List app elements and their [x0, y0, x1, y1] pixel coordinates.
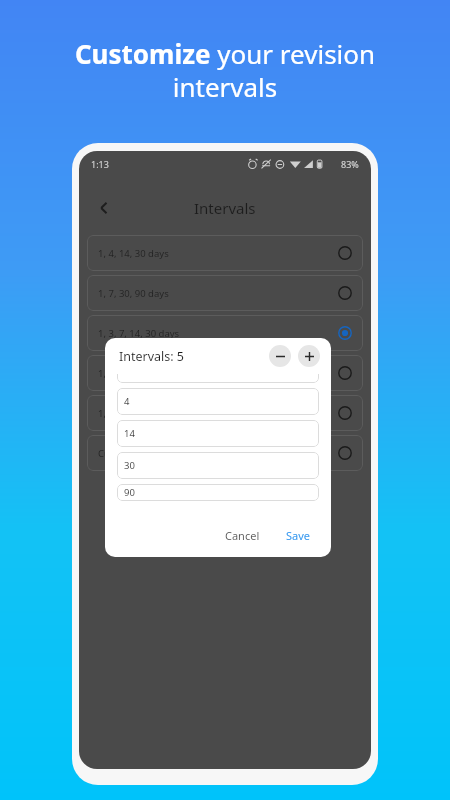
button[interactable]: Increase: [298, 345, 320, 367]
staticText: 1, 7, 30, 90 days: [98, 287, 169, 300]
button[interactable]: 30: [117, 452, 319, 479]
button[interactable]: Back: [87, 191, 121, 225]
button[interactable]: 1, 4, 14, 30 days: [87, 235, 363, 271]
staticText: 90: [124, 486, 135, 499]
button[interactable]: 1: [117, 374, 319, 383]
staticText: 1:13: [91, 158, 109, 170]
staticText: 1, 2, 5, 10, 20 days: [98, 407, 180, 420]
staticText: 1, 3, 7, 14, 30 days: [98, 327, 180, 340]
button[interactable]: Custom: [87, 435, 363, 471]
button[interactable]: 4: [117, 388, 319, 415]
staticText: 1, 5, 15, 40 days: [98, 367, 169, 380]
staticText: Intervals: 5: [119, 348, 185, 365]
button[interactable]: 1, 5, 15, 40 days: [87, 355, 363, 391]
staticText: Cancel: [225, 528, 260, 543]
staticText: 30: [124, 459, 135, 472]
button[interactable]: Save: [280, 525, 317, 546]
button[interactable]: 90: [117, 484, 319, 501]
button[interactable]: Cancel: [219, 525, 266, 546]
button[interactable]: 1, 3, 7, 14, 30 days: [87, 315, 363, 351]
staticText: Custom: [98, 447, 133, 460]
button[interactable]: 1, 2, 5, 10, 20 days: [87, 395, 363, 431]
button[interactable]: Decrease: [269, 345, 291, 367]
button[interactable]: 1, 7, 30, 90 days: [87, 275, 363, 311]
button[interactable]: 14: [117, 420, 319, 447]
staticText: 1, 4, 14, 30 days: [98, 247, 169, 260]
staticText: 83%: [341, 158, 359, 170]
staticText: Intervals: [194, 198, 256, 218]
staticText: 14: [124, 427, 135, 440]
staticText: Customize your revision intervals: [20, 36, 430, 105]
staticText: 4: [124, 395, 130, 408]
staticText: Save: [286, 528, 311, 543]
